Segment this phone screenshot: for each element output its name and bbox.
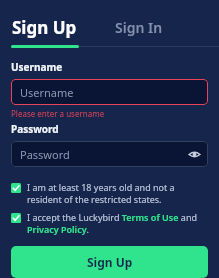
button[interactable]: Sign Up [11, 16, 78, 39]
staticText: Username [20, 85, 74, 100]
staticText: I accept the Luckybird Terms of Use and … [27, 211, 208, 236]
button[interactable]: Username [11, 79, 208, 105]
staticText: Password [11, 122, 59, 136]
button[interactable]: I accept the Luckybird Terms of Use and … [11, 211, 208, 236]
button[interactable]: Show password [185, 145, 203, 163]
staticText: Username [11, 60, 63, 74]
staticText: Please enter a username [11, 108, 105, 119]
staticText: Sign Up [87, 254, 133, 270]
staticText: Password [20, 147, 70, 162]
staticText: Sign In [115, 18, 163, 37]
staticText: I am at least 18 years old and not a res… [27, 181, 208, 206]
button[interactable]: Password [11, 141, 208, 167]
button[interactable]: I am at least 18 years old and not a res… [11, 181, 208, 206]
staticText: Sign Up [12, 16, 77, 39]
button[interactable]: Sign Up [11, 246, 208, 278]
button[interactable]: Sign In [114, 18, 164, 37]
